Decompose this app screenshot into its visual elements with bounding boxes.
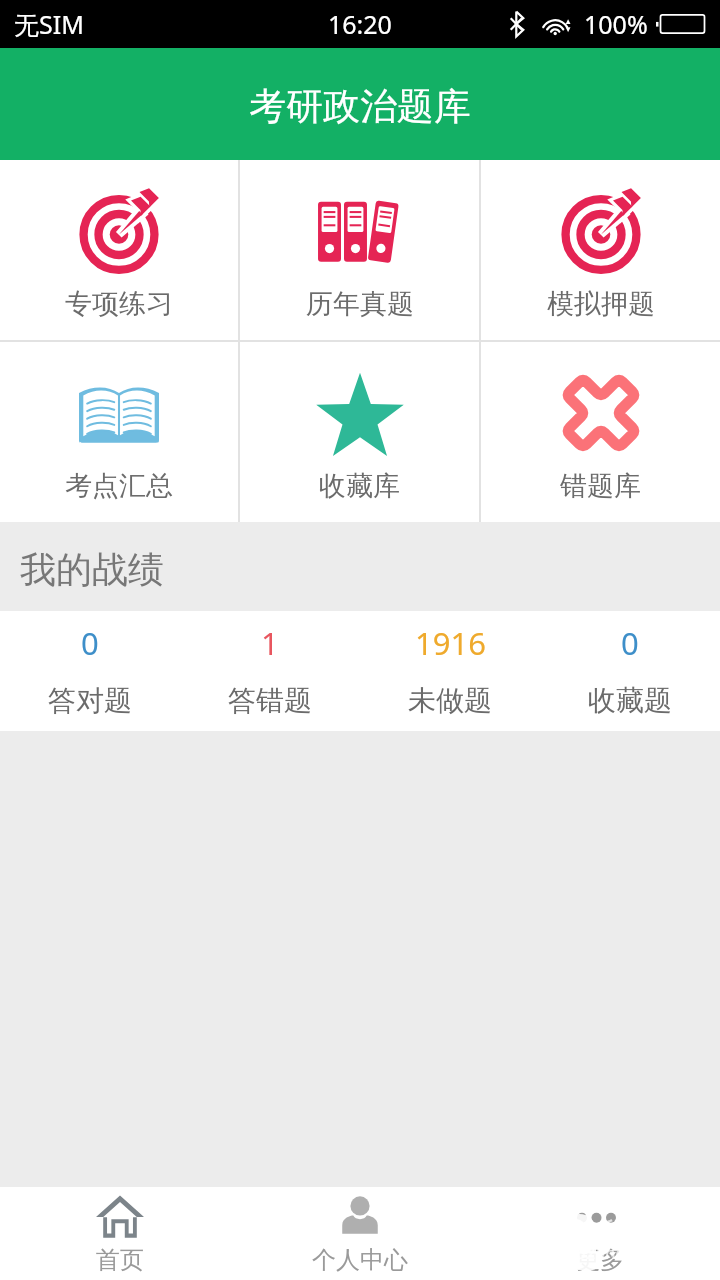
button[interactable]: 0	[540, 611, 720, 731]
staticText: 答错题	[228, 683, 312, 718]
button[interactable]: More	[480, 1187, 720, 1280]
staticText: 16:20	[328, 7, 392, 41]
staticText: 答对题	[48, 683, 132, 718]
staticText: 错题库	[560, 469, 641, 503]
staticText: 首页	[96, 1245, 144, 1275]
button[interactable]: 模拟押题	[481, 160, 720, 340]
staticText: 更多	[576, 1245, 624, 1275]
button[interactable]: Profile	[240, 1187, 480, 1280]
staticText: 我的战绩	[20, 547, 164, 592]
staticText: 收藏题	[588, 683, 672, 718]
button[interactable]: 错题库	[481, 342, 720, 522]
button[interactable]: 0	[0, 611, 180, 731]
button[interactable]: 历年真题	[240, 160, 479, 340]
staticText: 收藏库	[319, 469, 400, 503]
button[interactable]: 考点汇总	[0, 342, 238, 522]
staticText: 模拟押题	[547, 287, 655, 321]
button[interactable]: 专项练习	[0, 160, 238, 340]
staticText: 无SIM	[14, 7, 84, 41]
staticText: 52android.com	[576, 1241, 697, 1264]
staticText: 历年真题	[306, 287, 414, 321]
button[interactable]: 1916	[360, 611, 540, 731]
staticText: 1	[261, 622, 279, 664]
staticText: 专项练习	[65, 287, 173, 321]
staticText: 我爱安卓	[601, 1216, 697, 1246]
staticText: 未做题	[408, 683, 492, 718]
button[interactable]: 1	[180, 611, 360, 731]
button[interactable]: 收藏库	[240, 342, 479, 522]
staticText: 考研政治题库	[249, 83, 471, 130]
staticText: 0	[81, 622, 99, 664]
staticText: 个人中心	[312, 1245, 408, 1275]
staticText: 考点汇总	[65, 469, 173, 503]
staticText: 1916	[415, 622, 486, 664]
staticText: 0	[621, 622, 639, 664]
staticText: 100%	[584, 7, 648, 41]
button[interactable]: Home	[0, 1187, 240, 1280]
